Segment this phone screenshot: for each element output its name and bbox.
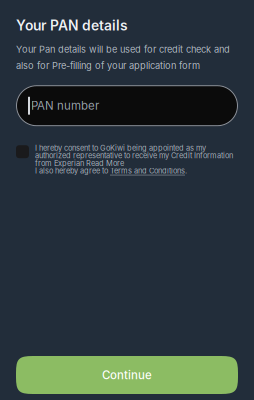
staticText: I also hereby agree to Terms and Conditi… (35, 166, 187, 175)
staticText: Continue (102, 368, 152, 382)
staticText: authorized representative to receive my … (35, 151, 233, 160)
staticText: Your PAN details (16, 17, 128, 34)
staticText: from Experian Read More (35, 159, 124, 168)
staticText: I hereby consent to GoKiwi being appoint… (35, 143, 206, 152)
staticText: PAN number (31, 99, 99, 113)
button[interactable]: I hereby consent to GoKiwi being appoint… (16, 144, 238, 175)
button[interactable]: Continue (16, 356, 238, 394)
button[interactable]: PAN number (16, 85, 238, 126)
staticText: also for Pre-filling of your application… (16, 60, 200, 71)
staticText: Your Pan details will be used for credit… (16, 44, 230, 55)
